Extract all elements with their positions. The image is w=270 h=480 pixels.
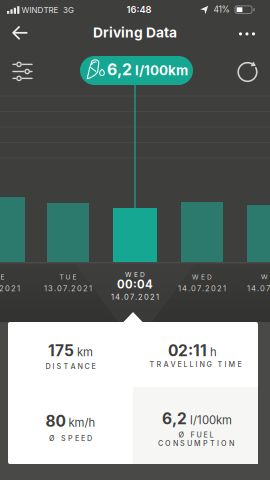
staticText: 1 4 . 0 7 . 2 0 2 1 — [178, 284, 226, 293]
staticText: Ø S P E E D — [49, 434, 92, 443]
staticText: Ø F U E L — [178, 431, 213, 439]
staticText: Driving Data — [93, 24, 177, 41]
staticText: 3G — [63, 5, 74, 15]
staticText: 175 km — [48, 341, 93, 360]
staticText: W E D — [192, 273, 212, 281]
staticText: 16:48 — [126, 4, 151, 15]
button[interactable]: Filter — [9, 59, 35, 83]
staticText: T U E — [0, 273, 4, 281]
staticText: 02:11 h — [168, 341, 217, 360]
staticText: 1 4 . 0 7 . 2 0 2 1 — [111, 292, 159, 302]
staticText: 80 km/h — [45, 412, 95, 430]
staticText: WINDTRE — [21, 5, 58, 15]
staticText: C O N S U M P T I O N — [158, 439, 234, 448]
staticText: W E D — [125, 270, 145, 278]
staticText: 1 3 . 0 7 . 2 0 2 1 — [0, 284, 20, 293]
staticText: 6,2 l/100km — [162, 409, 232, 428]
staticText: W E D — [261, 273, 270, 281]
staticText: T R A V E L L I N G T I M E — [149, 360, 241, 369]
button[interactable]: Back — [12, 26, 27, 40]
staticText: 6,2 l/100km — [107, 60, 188, 79]
staticText: 1 3 . 0 7 . 2 0 2 1 — [44, 284, 92, 293]
button[interactable]: More options — [238, 29, 255, 39]
staticText: 41% — [213, 4, 229, 15]
staticText: 00:04 — [117, 278, 153, 291]
staticText: 1 4 . 0 7 . 2 0 2 1 — [247, 284, 270, 293]
staticText: D I S T A N C E — [45, 362, 95, 371]
staticText: T U E — [59, 273, 76, 281]
button[interactable]: Refresh — [235, 60, 259, 84]
button[interactable]: Fuel consumption 6,2 litres per 100 km — [80, 56, 193, 85]
